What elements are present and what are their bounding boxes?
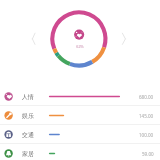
button[interactable]: 家居 [0,144,160,160]
staticText: 145.00 [139,113,154,119]
staticText: 娱乐 [22,112,34,120]
button[interactable]: Previous period [27,29,43,45]
staticText: 家居 [22,150,34,158]
staticText: 680.00 [139,94,154,100]
staticText: 交通 [22,131,34,139]
staticText: 人情 [22,93,34,101]
staticText: 62% [70,44,90,49]
button[interactable]: 交通 [0,125,160,144]
staticText: 59.00 [142,151,154,157]
button[interactable]: 娱乐 [0,106,160,125]
button[interactable]: Expense breakdown chart, 62 percent [50,10,108,68]
button[interactable]: 人情 [0,87,160,106]
staticText: 100.00 [139,132,154,138]
button[interactable]: Next period [117,29,133,45]
